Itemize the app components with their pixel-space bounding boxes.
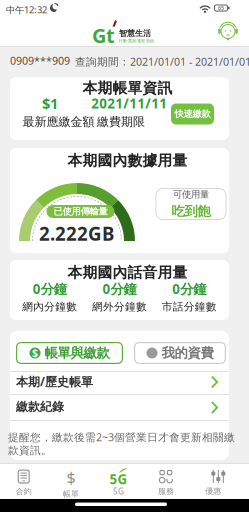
staticText: 網內分鐘數 (22, 300, 77, 313)
button[interactable]: 快速繳款 (171, 103, 214, 124)
staticText: 已使用傳輸量 (53, 206, 107, 217)
staticText: 服務 (158, 486, 174, 496)
staticText: 0909***909 (10, 53, 70, 68)
staticText: 優惠 (205, 486, 221, 496)
staticText: 5G (113, 486, 124, 497)
button[interactable]: 我的資費 (134, 342, 226, 364)
staticText: 款資訊。 (8, 444, 52, 457)
staticText: 0分鐘 (172, 280, 206, 298)
staticText: 本期/歷史帳單 (16, 373, 93, 389)
staticText: 可使用量 (173, 189, 209, 200)
staticText: 2.222GB (39, 221, 114, 246)
staticText: 查詢期間：2021/01/01 - 2021/01/01 (75, 54, 249, 69)
button[interactable]: $ (16, 342, 123, 364)
staticText: $ (67, 467, 76, 488)
staticText: 0分鐘 (103, 280, 137, 298)
button[interactable]: 5G (95, 468, 142, 498)
button[interactable]: 本期/歷史帳單 (10, 372, 229, 394)
button[interactable]: 客服 (218, 21, 238, 41)
staticText: $1 (42, 93, 58, 113)
staticText: 2021/11/11 (91, 94, 167, 112)
staticText: 市話分鐘數 (162, 300, 217, 313)
staticText: 0分鐘 (33, 280, 67, 298)
button[interactable]: $ (47, 468, 95, 498)
button[interactable]: 合約 (0, 468, 47, 498)
button[interactable]: 繳款紀錄 (10, 395, 229, 420)
staticText: 65 (218, 4, 224, 12)
staticText: 我的資費 (161, 345, 213, 361)
button[interactable]: 服務 (142, 468, 190, 498)
staticText: 行動·寬頻·電視·加值 (119, 38, 154, 43)
button[interactable]: 優惠 (190, 468, 237, 498)
staticText: 本期國內話音用量 (67, 263, 187, 281)
staticText: 本期國內數據用量 (67, 151, 187, 169)
staticText: 5G (109, 470, 127, 488)
staticText: 吃到飽 (171, 203, 210, 219)
staticText: 繳款紀錄 (16, 399, 64, 414)
button[interactable]: 0909***909 (10, 53, 70, 68)
staticText: 帳單與繳款 (44, 345, 109, 361)
staticText: 最新應繳金額 (22, 114, 94, 129)
staticText: 提醒您，繳款後需2~3個營業日才會更新相關繳 (8, 430, 235, 444)
staticText: 智慧生活 (119, 28, 151, 38)
staticText: 帳單 (63, 489, 79, 499)
staticText: 網外分鐘數 (92, 300, 147, 313)
staticText: 繳費期限 (97, 114, 145, 129)
staticText: 中午12:32 (6, 3, 47, 16)
staticText: $ (32, 345, 38, 360)
staticText: 合約 (16, 487, 32, 496)
staticText: Gt (92, 22, 115, 49)
staticText: 本期帳單資訊 (82, 79, 172, 97)
staticText: 快速繳款 (174, 108, 210, 120)
